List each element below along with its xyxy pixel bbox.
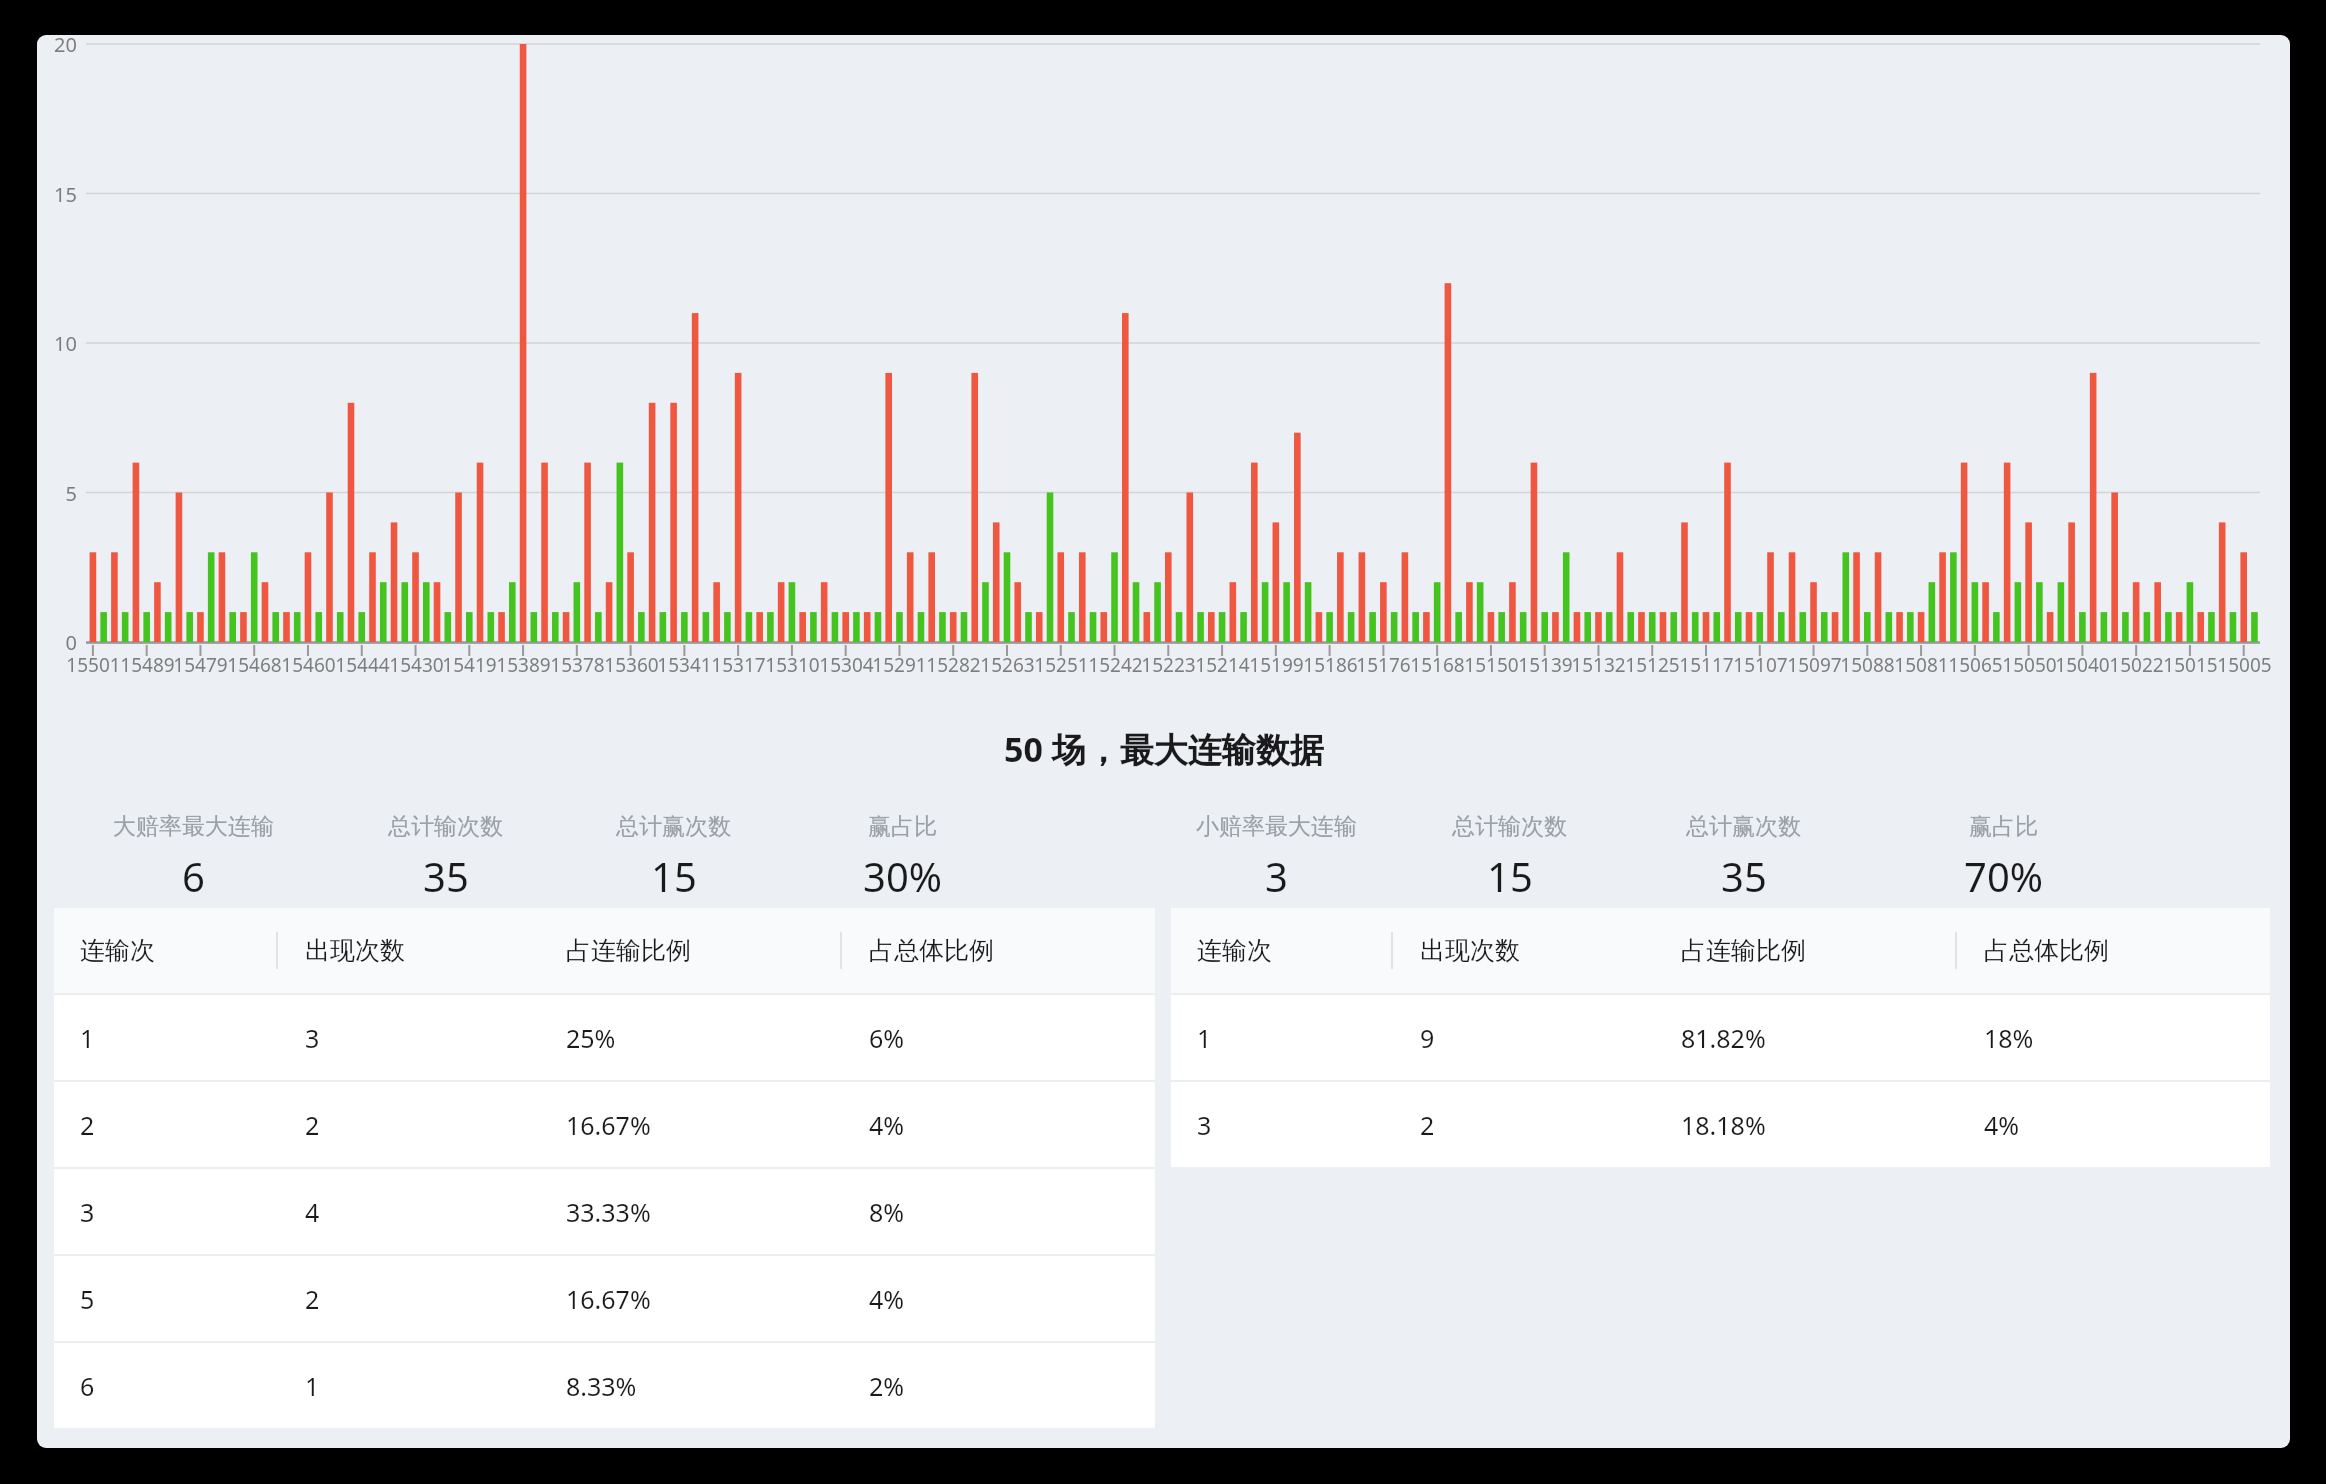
staticText: 15479	[173, 652, 228, 678]
staticText: 15	[1487, 849, 1533, 902]
button[interactable]: 总计赢次数	[543, 812, 803, 902]
staticText: 15460	[281, 652, 336, 678]
staticText: 15081	[1894, 652, 1949, 678]
staticText: 35	[423, 849, 469, 902]
button[interactable]: 5	[54, 1256, 1155, 1341]
staticText: 15040	[2055, 652, 2110, 678]
staticText: 15117	[1679, 652, 1734, 678]
staticText: 15501	[66, 652, 121, 678]
staticText: 15	[54, 181, 77, 208]
staticText: 70%	[1964, 849, 2043, 902]
staticText: 3	[1265, 849, 1288, 902]
staticText: 连输次	[1197, 935, 1272, 966]
button[interactable]: 小赔率最大连输	[1146, 812, 1406, 902]
button[interactable]: 2	[54, 1082, 1155, 1167]
staticText: 0	[65, 629, 77, 656]
staticText: 15341	[657, 652, 712, 678]
button[interactable]: 3	[1171, 1082, 2270, 1167]
staticText: 占连输比例	[1681, 935, 1806, 966]
staticText: 总计输次数	[1452, 812, 1567, 841]
button[interactable]: 赢占比	[772, 812, 1032, 902]
staticText: 81.82%	[1681, 1021, 1766, 1055]
staticText: 4	[305, 1195, 320, 1229]
staticText: 15139	[1518, 652, 1573, 678]
staticText: 15263	[980, 652, 1035, 678]
staticText: 15186	[1303, 652, 1358, 678]
button[interactable]: 1	[1171, 995, 2270, 1080]
staticText: 15150	[1464, 652, 1519, 678]
button[interactable]: 赢占比	[1873, 812, 2133, 902]
staticText: 15430	[389, 652, 444, 678]
button[interactable]: 连输次	[1171, 908, 2270, 993]
staticText: 15444	[335, 652, 390, 678]
staticText: 15022	[2109, 652, 2164, 678]
staticText: 15242	[1088, 652, 1143, 678]
staticText: 8%	[869, 1195, 905, 1229]
button[interactable]: 总计输次数	[1379, 812, 1639, 902]
button[interactable]: 6	[54, 1343, 1155, 1428]
staticText: 3	[1197, 1108, 1212, 1142]
button[interactable]: 大赔率最大连输	[63, 812, 323, 902]
staticText: 16.67%	[566, 1282, 651, 1316]
staticText: 占总体比例	[869, 935, 994, 966]
staticText: 10	[54, 330, 77, 357]
staticText: 15282	[926, 652, 981, 678]
staticText: 15489	[120, 652, 175, 678]
button[interactable]: 总计赢次数	[1613, 812, 1873, 902]
staticText: 3	[80, 1195, 95, 1229]
staticText: 小赔率最大连输	[1196, 812, 1357, 841]
staticText: 15132	[1571, 652, 1626, 678]
button[interactable]: 总计输次数	[315, 812, 575, 902]
staticText: 5	[80, 1282, 95, 1316]
button[interactable]: 连输次	[54, 908, 1155, 993]
staticText: 16.67%	[566, 1108, 651, 1142]
staticText: 15419	[442, 652, 497, 678]
staticText: 3	[305, 1021, 320, 1055]
staticText: 33.33%	[566, 1195, 651, 1229]
staticText: 2%	[869, 1369, 905, 1403]
staticText: 15050	[2002, 652, 2057, 678]
staticText: 赢占比	[1969, 812, 2038, 841]
button[interactable]: 1	[54, 995, 1155, 1080]
staticText: 占总体比例	[1984, 935, 2109, 966]
staticText: 35	[1721, 849, 1767, 902]
staticText: 18%	[1984, 1021, 2034, 1055]
staticText: 4%	[869, 1282, 905, 1316]
staticText: 2	[80, 1108, 95, 1142]
staticText: 总计赢次数	[616, 812, 731, 841]
staticText: 15015	[2163, 652, 2218, 678]
staticText: 15199	[1249, 652, 1304, 678]
staticText: 25%	[566, 1021, 616, 1055]
staticText: 15176	[1356, 652, 1411, 678]
staticText: 15360	[604, 652, 659, 678]
staticText: 出现次数	[305, 935, 405, 966]
staticText: 赢占比	[868, 812, 937, 841]
staticText: 15389	[496, 652, 551, 678]
staticText: 15	[651, 849, 697, 902]
staticText: 18.18%	[1681, 1108, 1766, 1142]
button[interactable]: 连输走势柱状图	[37, 35, 2290, 680]
staticText: 15214	[1195, 652, 1250, 678]
staticText: 15468	[227, 652, 282, 678]
staticText: 15291	[872, 652, 927, 678]
staticText: 15304	[819, 652, 874, 678]
staticText: 15223	[1141, 652, 1196, 678]
staticText: 出现次数	[1420, 935, 1520, 966]
staticText: 15125	[1625, 652, 1680, 678]
staticText: 15005	[2217, 652, 2272, 678]
staticText: 6	[182, 849, 205, 902]
staticText: 1	[80, 1021, 95, 1055]
staticText: 总计输次数	[388, 812, 503, 841]
staticText: 15097	[1787, 652, 1842, 678]
staticText: 4%	[869, 1108, 905, 1142]
staticText: 50 场，最大连输数据	[1004, 726, 1324, 772]
staticText: 15168	[1410, 652, 1465, 678]
staticText: 15378	[550, 652, 605, 678]
staticText: 15251	[1034, 652, 1089, 678]
staticText: 连输次	[80, 935, 155, 966]
staticText: 15088	[1840, 652, 1895, 678]
button[interactable]: 3	[54, 1169, 1155, 1254]
staticText: 9	[1420, 1021, 1435, 1055]
staticText: 15065	[1948, 652, 2003, 678]
staticText: 2	[305, 1108, 320, 1142]
